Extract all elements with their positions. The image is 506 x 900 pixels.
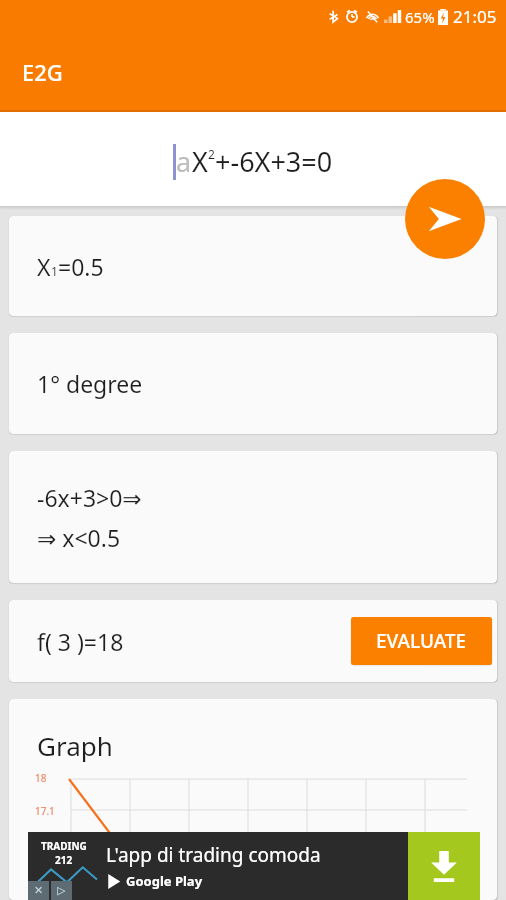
- button[interactable]: EVALUATE: [351, 617, 492, 665]
- staticText: f( 3 )=18: [37, 626, 124, 657]
- staticText: Google Play: [126, 872, 203, 890]
- button[interactable]: TRADING: [28, 832, 480, 900]
- staticText: X: [192, 143, 208, 180]
- staticText: EVALUATE: [376, 628, 467, 654]
- staticText: 1: [51, 263, 58, 279]
- button[interactable]: X: [9, 216, 497, 316]
- staticText: 1° degree: [37, 368, 143, 399]
- staticText: TRADING: [41, 839, 87, 853]
- button[interactable]: -6x+3>0⇒: [9, 451, 497, 583]
- staticText: a: [176, 143, 192, 180]
- staticText: 2: [208, 146, 215, 162]
- staticText: ▷: [57, 884, 66, 897]
- staticText: -6x+3>0⇒: [37, 482, 142, 513]
- button[interactable]: Solve: [405, 179, 485, 259]
- staticText: ✕: [34, 884, 44, 897]
- staticText: X: [37, 251, 51, 282]
- staticText: ⇒ x<0.5: [37, 522, 121, 553]
- staticText: +-6X+3=0: [215, 143, 333, 180]
- button[interactable]: a: [0, 112, 506, 210]
- staticText: Graph: [37, 728, 113, 763]
- staticText: 65%: [405, 7, 435, 27]
- button[interactable]: Graph: [9, 699, 497, 900]
- button[interactable]: 1° degree: [9, 333, 497, 434]
- staticText: 18: [35, 771, 47, 785]
- staticText: 21:05: [453, 5, 497, 28]
- staticText: L'app di trading comoda: [106, 842, 321, 868]
- staticText: 212: [55, 853, 73, 867]
- staticText: 17.1: [35, 804, 55, 818]
- staticText: 16.2: [35, 837, 55, 851]
- button[interactable]: f( 3 )=18: [9, 600, 497, 682]
- staticText: =0.5: [58, 251, 104, 282]
- button[interactable]: Install: [408, 832, 480, 900]
- staticText: E2G: [22, 57, 63, 87]
